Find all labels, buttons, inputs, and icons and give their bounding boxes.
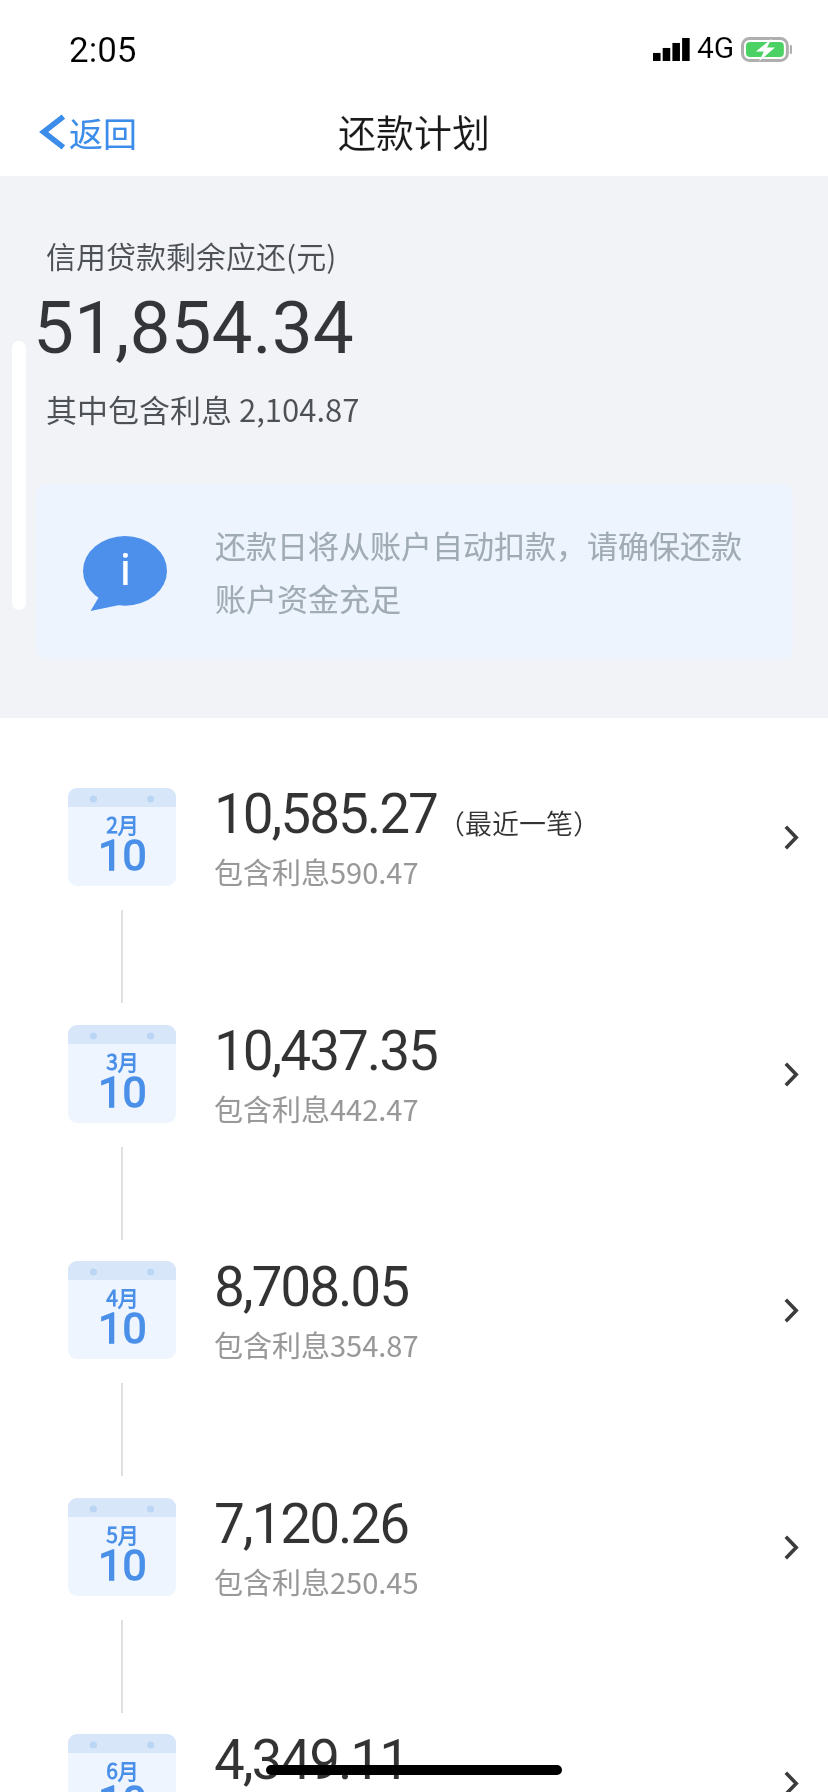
staticText: 返回 [69,108,137,157]
staticText: 10,585.27 [214,782,437,846]
staticText: 其中包含利息 2,104.87 [46,386,360,431]
button[interactable]: 3月 [0,1001,828,1147]
staticText: 10 [98,1540,147,1590]
staticText: 10 [98,830,147,880]
staticText: 10 [98,1067,147,1117]
staticText: 包含利息354.87 [214,1323,419,1365]
staticText: 信用贷款剩余应还(元) [46,233,337,276]
staticText: 还款计划 [338,103,491,158]
staticText: 4月 [106,1282,139,1312]
staticText: 10 [98,1303,147,1353]
button[interactable]: 4月 [0,1237,828,1383]
staticText: 包含利息590.47 [214,850,419,892]
staticText: 包含利息442.47 [214,1087,419,1129]
staticText: （最近一笔） [438,803,600,842]
staticText: 3月 [106,1046,139,1076]
staticText: 4,349.11 [214,1728,408,1792]
staticText: 7,120.26 [214,1492,408,1556]
staticText: 5月 [106,1519,139,1549]
button[interactable]: 返回 [0,94,161,170]
staticText: 包含利息250.45 [214,1560,419,1602]
staticText: 10,437.35 [214,1019,437,1083]
staticText: 8,708.05 [214,1255,408,1319]
staticText: 4G [697,30,735,65]
button[interactable]: 2月 [0,764,828,910]
button[interactable]: 5月 [0,1474,828,1620]
staticText: 6月 [106,1755,139,1785]
staticText: 2:05 [69,30,137,71]
staticText: 2月 [106,809,139,839]
staticText: 51,854.34 [33,285,354,371]
button[interactable]: 6月 [0,1710,828,1792]
staticText: 10 [98,1776,147,1792]
staticText: i [120,544,131,596]
staticText: 还款日将从账户自动扣款，请确保还款账户资金充足 [215,522,760,620]
